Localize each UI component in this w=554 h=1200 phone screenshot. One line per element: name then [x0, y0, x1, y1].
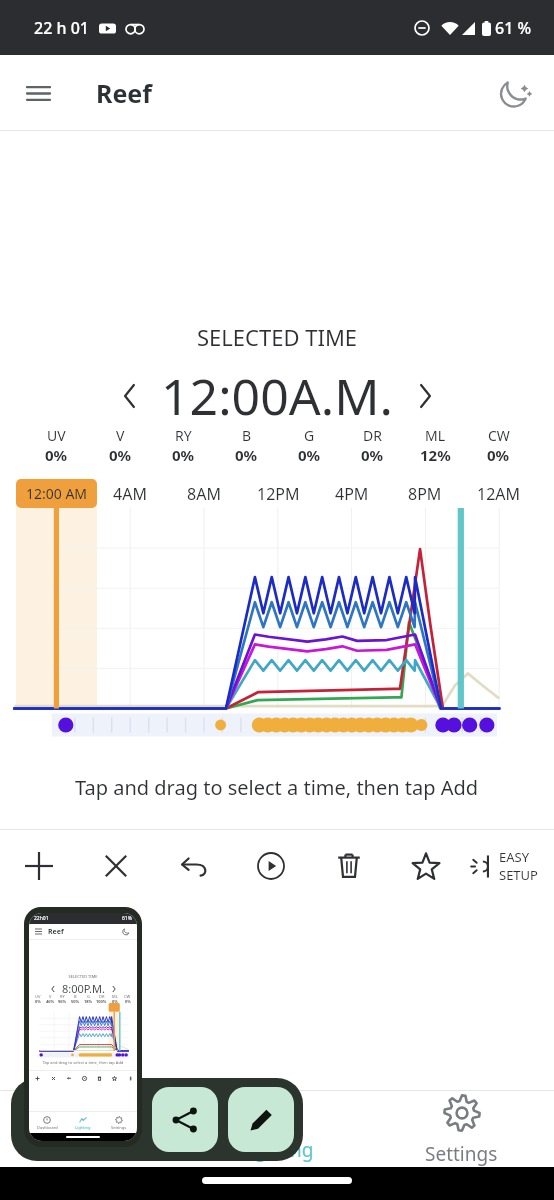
- button[interactable]: Add: [11, 831, 67, 901]
- staticText: Reef: [96, 76, 152, 110]
- button[interactable]: Previous: [107, 374, 151, 418]
- staticText: UV: [47, 426, 66, 445]
- staticText: B: [74, 994, 77, 999]
- button[interactable]: Next: [403, 374, 447, 418]
- staticText: 0%: [35, 999, 41, 1004]
- staticText: G: [304, 426, 315, 445]
- staticText: 61%: [122, 915, 132, 922]
- staticText: Reef: [48, 927, 64, 937]
- staticText: Tap and drag to select a time, then tap …: [75, 774, 479, 801]
- staticText: 0%: [125, 999, 131, 1004]
- staticText: 96%: [58, 999, 67, 1004]
- staticText: G: [87, 994, 90, 999]
- staticText: 4PM: [335, 483, 369, 505]
- button[interactable]: Share: [152, 1087, 218, 1152]
- staticText: V: [116, 426, 125, 445]
- button[interactable]: Night mode: [490, 67, 542, 119]
- staticText: RY: [175, 426, 192, 445]
- staticText: 0%: [45, 445, 68, 465]
- staticText: 12AM: [477, 483, 521, 505]
- staticText: EASY: [499, 848, 530, 866]
- staticText: Lighting: [240, 1137, 314, 1163]
- staticText: 50%: [71, 999, 80, 1004]
- staticText: 0%: [361, 445, 384, 465]
- button[interactable]: Menu: [13, 68, 63, 118]
- staticText: 4AM: [113, 483, 147, 505]
- button[interactable]: Favorite: [398, 831, 454, 901]
- button[interactable]: Undo: [166, 831, 222, 901]
- staticText: 18%: [84, 999, 93, 1004]
- button[interactable]: Close: [88, 831, 144, 901]
- staticText: Settings: [425, 1141, 498, 1167]
- staticText: SELECTED TIME: [197, 322, 358, 352]
- staticText: DR: [99, 994, 105, 999]
- staticText: 0%: [109, 445, 132, 465]
- button[interactable]: Lighting: [184, 1055, 369, 1160]
- staticText: 0%: [112, 999, 118, 1004]
- staticText: ML: [112, 994, 118, 999]
- staticText: 22h01: [34, 915, 49, 922]
- button[interactable]: Easy setup: [470, 831, 554, 901]
- staticText: RY: [60, 994, 65, 999]
- staticText: Dashboard: [37, 1125, 58, 1130]
- staticText: 22 h 01: [34, 17, 89, 39]
- staticText: V: [49, 994, 52, 999]
- staticText: UV: [35, 994, 41, 999]
- staticText: 0%: [235, 445, 258, 465]
- staticText: 12%: [420, 445, 451, 465]
- staticText: CW: [124, 994, 131, 999]
- staticText: 8PM: [408, 483, 442, 505]
- button[interactable]: Play: [243, 831, 299, 901]
- staticText: 100%: [96, 999, 107, 1004]
- button[interactable]: Edit: [228, 1087, 294, 1152]
- staticText: 12:00 AM: [16, 484, 97, 503]
- button[interactable]: Delete: [321, 831, 377, 901]
- staticText: DR: [363, 426, 382, 445]
- staticText: ML: [425, 426, 446, 445]
- staticText: SETUP: [499, 866, 538, 884]
- staticText: 12:00A.M.: [161, 362, 393, 430]
- staticText: 0%: [487, 445, 510, 465]
- staticText: 0%: [172, 445, 195, 465]
- button[interactable]: Dashboard: [0, 1055, 184, 1160]
- staticText: 0%: [298, 445, 321, 465]
- staticText: Tap and drag to select a time, then tap …: [29, 1060, 137, 1065]
- staticText: 46%: [46, 999, 55, 1004]
- staticText: Lighting: [75, 1125, 91, 1130]
- staticText: B: [242, 426, 252, 445]
- staticText: Settings: [111, 1125, 127, 1130]
- staticText: 61 %: [495, 17, 532, 39]
- staticText: 12PM: [257, 483, 300, 505]
- staticText: CW: [488, 426, 510, 445]
- staticText: SELECTED TIME: [29, 974, 137, 979]
- staticText: 8:00P.M.: [62, 981, 105, 996]
- button[interactable]: Settings: [369, 1055, 554, 1160]
- staticText: Dashboard: [43, 1137, 142, 1163]
- staticText: 8AM: [187, 483, 221, 505]
